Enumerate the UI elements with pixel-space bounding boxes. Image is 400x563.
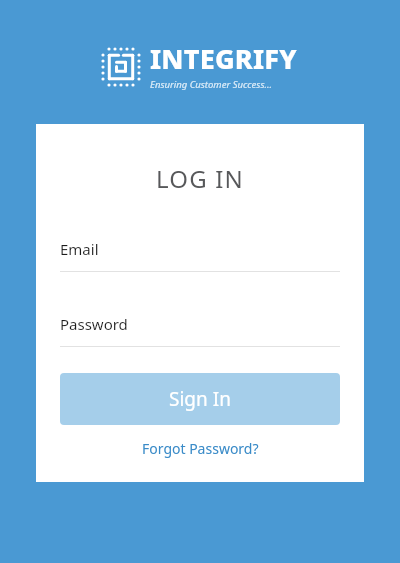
staticText: Sign In bbox=[169, 386, 231, 412]
staticText: LOG IN bbox=[60, 162, 340, 195]
staticText: Email bbox=[60, 239, 99, 259]
button[interactable]: Email bbox=[60, 239, 340, 272]
staticText: Forgot Password? bbox=[142, 439, 259, 458]
staticText: Password bbox=[60, 314, 128, 334]
button[interactable]: Forgot Password? bbox=[136, 437, 265, 460]
staticText: Ensuring Customer Success... bbox=[150, 78, 272, 91]
staticText: INTEGRIFY bbox=[150, 40, 297, 77]
button[interactable]: Password bbox=[60, 314, 340, 347]
button[interactable]: Sign In bbox=[60, 373, 340, 425]
